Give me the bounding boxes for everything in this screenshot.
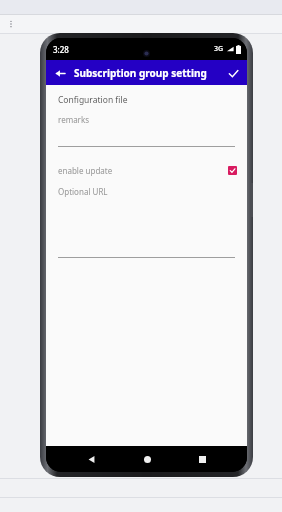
button[interactable]: remarks xyxy=(46,114,247,147)
button[interactable]: Home xyxy=(136,448,158,470)
staticText: enable update xyxy=(58,165,113,176)
staticText: Subscription group setting xyxy=(74,66,207,80)
button[interactable]: Save xyxy=(223,63,243,83)
button[interactable]: Back xyxy=(80,448,102,470)
staticText: 3:28 xyxy=(53,44,69,55)
staticText: remarks xyxy=(58,114,90,125)
button[interactable]: More options xyxy=(5,18,17,30)
button[interactable]: Optional URL xyxy=(46,186,247,258)
staticText: Optional URL xyxy=(58,186,108,197)
button[interactable]: Back xyxy=(50,63,70,83)
button[interactable]: enable update xyxy=(46,162,247,178)
staticText: 3G xyxy=(214,44,224,54)
staticText: Configuration file xyxy=(58,94,128,106)
button[interactable]: Recent apps xyxy=(191,448,213,470)
